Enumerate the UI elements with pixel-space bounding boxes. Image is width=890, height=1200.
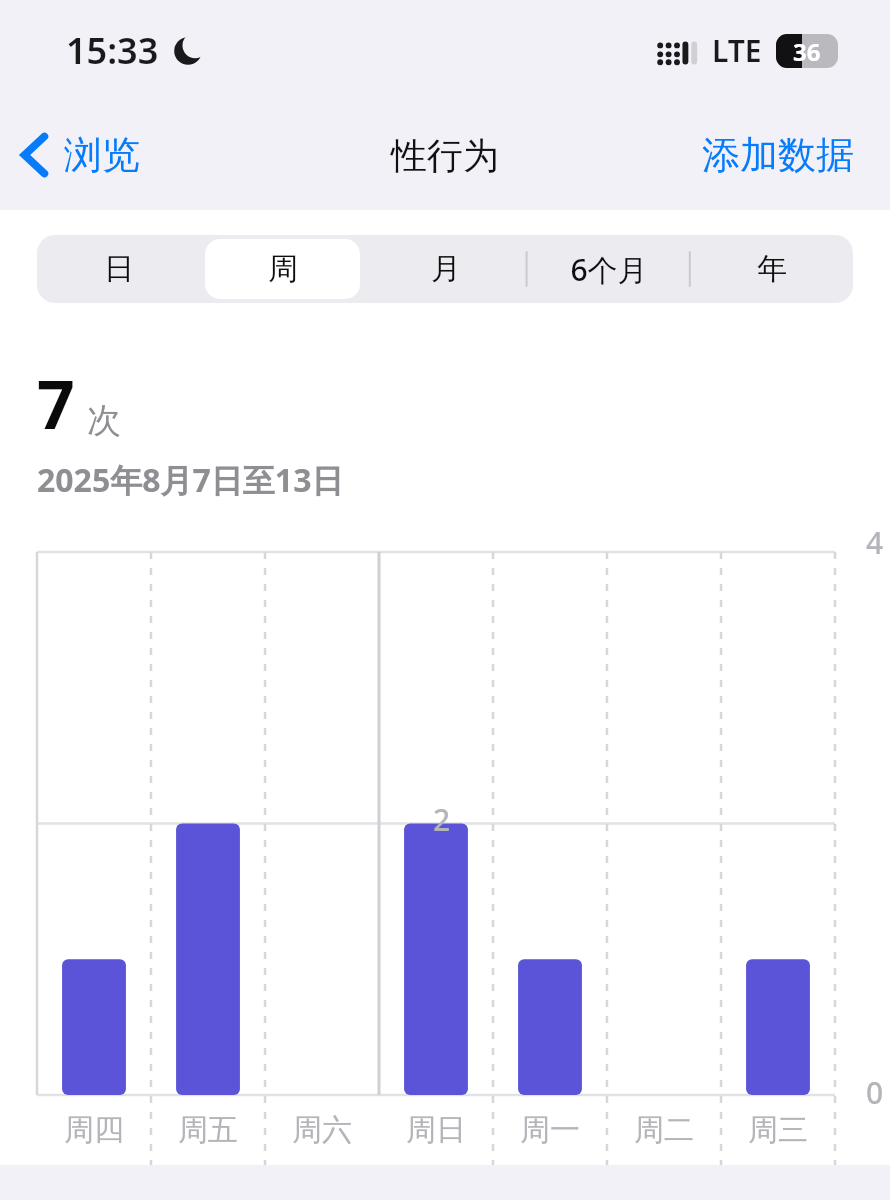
button[interactable]: 日 [41,239,197,299]
staticText: 4 [866,522,884,563]
staticText: 0 [866,1072,884,1113]
button[interactable]: 年 [694,239,849,299]
button[interactable]: 月 [368,239,523,299]
staticText: 6个月 [570,249,648,290]
button[interactable]: 6个月 [531,239,686,299]
staticText: 周四 [64,1111,124,1149]
button[interactable]: 浏览 [0,123,152,187]
staticText: 15:33 [66,26,159,75]
staticText: 周五 [178,1111,238,1149]
staticText: 日 [104,250,134,288]
staticText: 7 [37,358,75,448]
staticText: 次 [87,399,121,442]
staticText: 添加数据 [702,131,854,179]
staticText: 2025年8月7日至13日 [37,458,344,502]
button[interactable]: 添加数据 [690,123,890,187]
staticText: 月 [431,250,461,288]
staticText: 周二 [634,1111,694,1149]
staticText: 36 [793,35,821,68]
staticText: 周 [268,250,298,288]
staticText: 年 [757,250,787,288]
staticText: 浏览 [64,131,140,179]
staticText: 周六 [292,1111,352,1149]
staticText: 周日 [406,1111,466,1149]
staticText: 周三 [748,1111,808,1149]
staticText: 周一 [520,1111,580,1149]
staticText: LTE [712,30,762,71]
staticText: 性行为 [391,133,499,178]
staticText: 2 [433,799,451,840]
button[interactable]: 周 [205,239,360,299]
